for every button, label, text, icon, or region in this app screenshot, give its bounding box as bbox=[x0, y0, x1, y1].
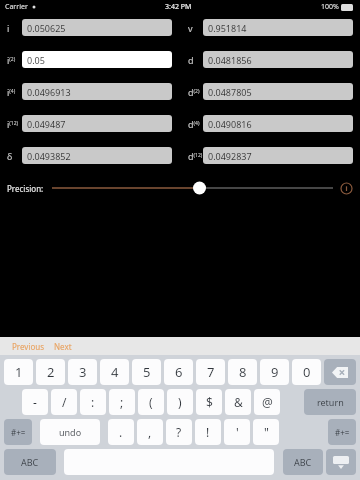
staticText: 2 bbox=[47, 363, 55, 381]
staticText: i(2) bbox=[7, 54, 16, 66]
button[interactable]: ! bbox=[195, 419, 221, 445]
staticText: i(12) bbox=[7, 118, 19, 130]
button[interactable]: 1 bbox=[4, 359, 33, 385]
staticText: ? bbox=[176, 424, 182, 440]
button[interactable]: 4 bbox=[100, 359, 129, 385]
staticText: Previous bbox=[12, 341, 45, 352]
staticText: ! bbox=[206, 424, 210, 440]
staticText: ABC bbox=[294, 456, 312, 468]
button[interactable]: ) bbox=[167, 389, 193, 415]
staticText: $ bbox=[206, 394, 213, 410]
staticText: @ bbox=[262, 394, 273, 410]
button[interactable]: $ bbox=[196, 389, 222, 415]
button[interactable]: undo bbox=[40, 419, 100, 445]
button[interactable]: 5 bbox=[132, 359, 161, 385]
button[interactable]: return bbox=[304, 389, 356, 415]
button[interactable]: & bbox=[225, 389, 251, 415]
staticText: 100% bbox=[321, 2, 339, 12]
button[interactable]: 0.0493852 bbox=[22, 147, 172, 164]
button[interactable]: @ bbox=[254, 389, 280, 415]
button[interactable]: 0.0496913 bbox=[22, 83, 172, 100]
button[interactable]: 6 bbox=[164, 359, 193, 385]
button[interactable]: 0.0490816 bbox=[203, 115, 353, 132]
button[interactable]: " bbox=[253, 419, 279, 445]
staticText: 0.05 bbox=[27, 54, 45, 66]
button[interactable]: 0.951814 bbox=[203, 19, 353, 36]
button[interactable]: ; bbox=[109, 389, 135, 415]
button[interactable]: 7 bbox=[196, 359, 225, 385]
button[interactable] bbox=[52, 180, 333, 196]
button[interactable]: ( bbox=[138, 389, 164, 415]
staticText: Precision: bbox=[7, 183, 44, 194]
staticText: ( bbox=[149, 394, 153, 410]
button[interactable]: 9 bbox=[260, 359, 289, 385]
button[interactable]: . bbox=[108, 419, 134, 445]
staticText: 6 bbox=[175, 363, 183, 381]
staticText: #+= bbox=[11, 427, 26, 438]
button[interactable]: #+= bbox=[4, 419, 32, 445]
staticText: , bbox=[148, 424, 152, 440]
staticText: 7 bbox=[207, 363, 215, 381]
button[interactable]: ABC bbox=[283, 449, 323, 475]
staticText: return bbox=[317, 396, 344, 408]
staticText: 4 bbox=[111, 363, 119, 381]
button[interactable]: Next bbox=[52, 339, 74, 354]
staticText: 8 bbox=[239, 363, 247, 381]
staticText: undo bbox=[59, 426, 82, 438]
staticText: ' bbox=[236, 424, 239, 440]
staticText: 3 bbox=[79, 363, 87, 381]
button[interactable]: ? bbox=[166, 419, 192, 445]
staticText: i(4) bbox=[7, 86, 16, 98]
button[interactable]: #+= bbox=[328, 419, 356, 445]
staticText: 0.0490816 bbox=[208, 118, 252, 130]
staticText: 0.0492837 bbox=[208, 150, 252, 162]
button[interactable]: : bbox=[80, 389, 106, 415]
staticText: 0.0481856 bbox=[208, 54, 252, 66]
staticText: 0.050625 bbox=[27, 22, 66, 34]
button[interactable]: 2 bbox=[36, 359, 65, 385]
button[interactable]: 0.0487805 bbox=[203, 83, 353, 100]
button[interactable]: 0.05 bbox=[22, 51, 172, 68]
staticText: 3:42 PM bbox=[165, 2, 192, 12]
staticText: d bbox=[188, 54, 194, 66]
button[interactable]: 3 bbox=[68, 359, 97, 385]
button[interactable]: 0.0481856 bbox=[203, 51, 353, 68]
staticText: 0.951814 bbox=[208, 22, 247, 34]
staticText: δ bbox=[7, 150, 13, 162]
button[interactable]: Info bbox=[340, 182, 353, 195]
staticText: : bbox=[91, 394, 95, 410]
button[interactable]: Hide keyboard bbox=[326, 449, 356, 475]
staticText: d(4) bbox=[188, 118, 200, 130]
staticText: ; bbox=[120, 394, 124, 410]
staticText: 0.0496913 bbox=[27, 86, 71, 98]
button[interactable]: Previous bbox=[10, 339, 47, 354]
button[interactable]: 0.050625 bbox=[22, 19, 172, 36]
staticText: / bbox=[62, 394, 67, 410]
button[interactable]: ABC bbox=[4, 449, 56, 475]
button[interactable]: Backspace bbox=[324, 359, 356, 385]
staticText: 0 bbox=[303, 363, 311, 381]
button[interactable]: 8 bbox=[228, 359, 257, 385]
staticText: d(12) bbox=[188, 150, 203, 162]
staticText: 0.049487 bbox=[27, 118, 66, 130]
staticText: i bbox=[7, 22, 10, 34]
button[interactable]: / bbox=[51, 389, 77, 415]
button[interactable]: - bbox=[22, 389, 48, 415]
staticText: 0.0493852 bbox=[27, 150, 71, 162]
button[interactable]: 0.0492837 bbox=[203, 147, 353, 164]
staticText: " bbox=[264, 424, 269, 440]
staticText: ABC bbox=[21, 456, 39, 468]
button[interactable]: , bbox=[137, 419, 163, 445]
staticText: #+= bbox=[335, 427, 350, 438]
button[interactable]: 0.049487 bbox=[22, 115, 172, 132]
staticText: 1 bbox=[15, 363, 23, 381]
staticText: 5 bbox=[143, 363, 151, 381]
staticText: v bbox=[188, 22, 193, 34]
button[interactable]: 0 bbox=[292, 359, 321, 385]
button[interactable]: ' bbox=[224, 419, 250, 445]
staticText: - bbox=[33, 394, 37, 410]
staticText: . bbox=[119, 424, 123, 440]
staticText: Carrier bbox=[5, 2, 28, 12]
staticText: & bbox=[234, 394, 243, 410]
